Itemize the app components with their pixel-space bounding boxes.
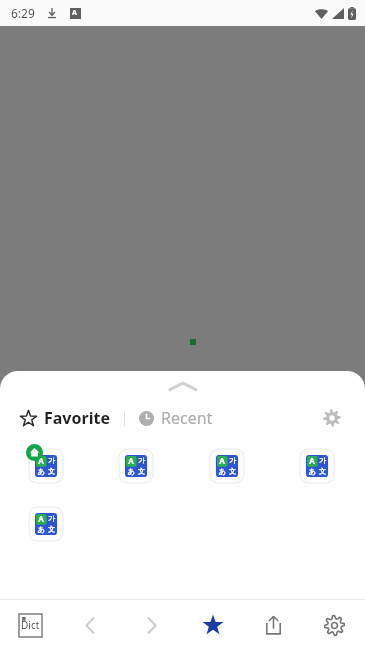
button[interactable]: Settings bbox=[317, 403, 347, 433]
staticText: 文 bbox=[319, 467, 326, 476]
button[interactable]: Back bbox=[60, 600, 121, 650]
staticText: A bbox=[38, 455, 44, 466]
button[interactable]: Translate app bbox=[27, 447, 65, 485]
staticText: Favorite bbox=[44, 407, 110, 429]
staticText: 가 bbox=[48, 456, 55, 465]
button[interactable]: Favorites bbox=[182, 600, 243, 650]
staticText: 가 bbox=[229, 456, 236, 465]
button[interactable]: Settings bbox=[304, 600, 365, 650]
staticText: 文 bbox=[229, 467, 236, 476]
staticText: 6:29 bbox=[11, 5, 35, 21]
staticText: Recent bbox=[161, 407, 213, 429]
button[interactable]: Share bbox=[243, 600, 304, 650]
staticText: Dict bbox=[21, 618, 40, 632]
staticText: あ bbox=[37, 467, 45, 476]
button[interactable]: Recent bbox=[139, 407, 213, 429]
staticText: 가 bbox=[319, 456, 326, 465]
staticText: 가 bbox=[138, 456, 145, 465]
staticText: A bbox=[219, 455, 225, 466]
button[interactable]: Translate app bbox=[117, 447, 155, 485]
button[interactable]: Dictionary bbox=[0, 600, 60, 650]
staticText: 文 bbox=[48, 467, 55, 476]
staticText: あ bbox=[37, 525, 45, 534]
button[interactable]: Translate app bbox=[298, 447, 336, 485]
staticText: あ bbox=[308, 467, 316, 476]
staticText: A bbox=[72, 8, 77, 18]
staticText: 文 bbox=[48, 525, 55, 534]
button[interactable]: Translate app bbox=[27, 505, 65, 543]
button[interactable]: Collapse sheet bbox=[0, 371, 365, 401]
staticText: A bbox=[38, 513, 44, 524]
staticText: A bbox=[309, 455, 315, 466]
staticText: あ bbox=[127, 467, 135, 476]
button[interactable]: Translate app bbox=[208, 447, 246, 485]
staticText: 가 bbox=[48, 514, 55, 523]
staticText: 文 bbox=[138, 467, 145, 476]
staticText: あ bbox=[218, 467, 226, 476]
button[interactable]: Forward bbox=[121, 600, 182, 650]
staticText: A bbox=[128, 455, 134, 466]
button[interactable]: Favorite bbox=[20, 407, 110, 429]
